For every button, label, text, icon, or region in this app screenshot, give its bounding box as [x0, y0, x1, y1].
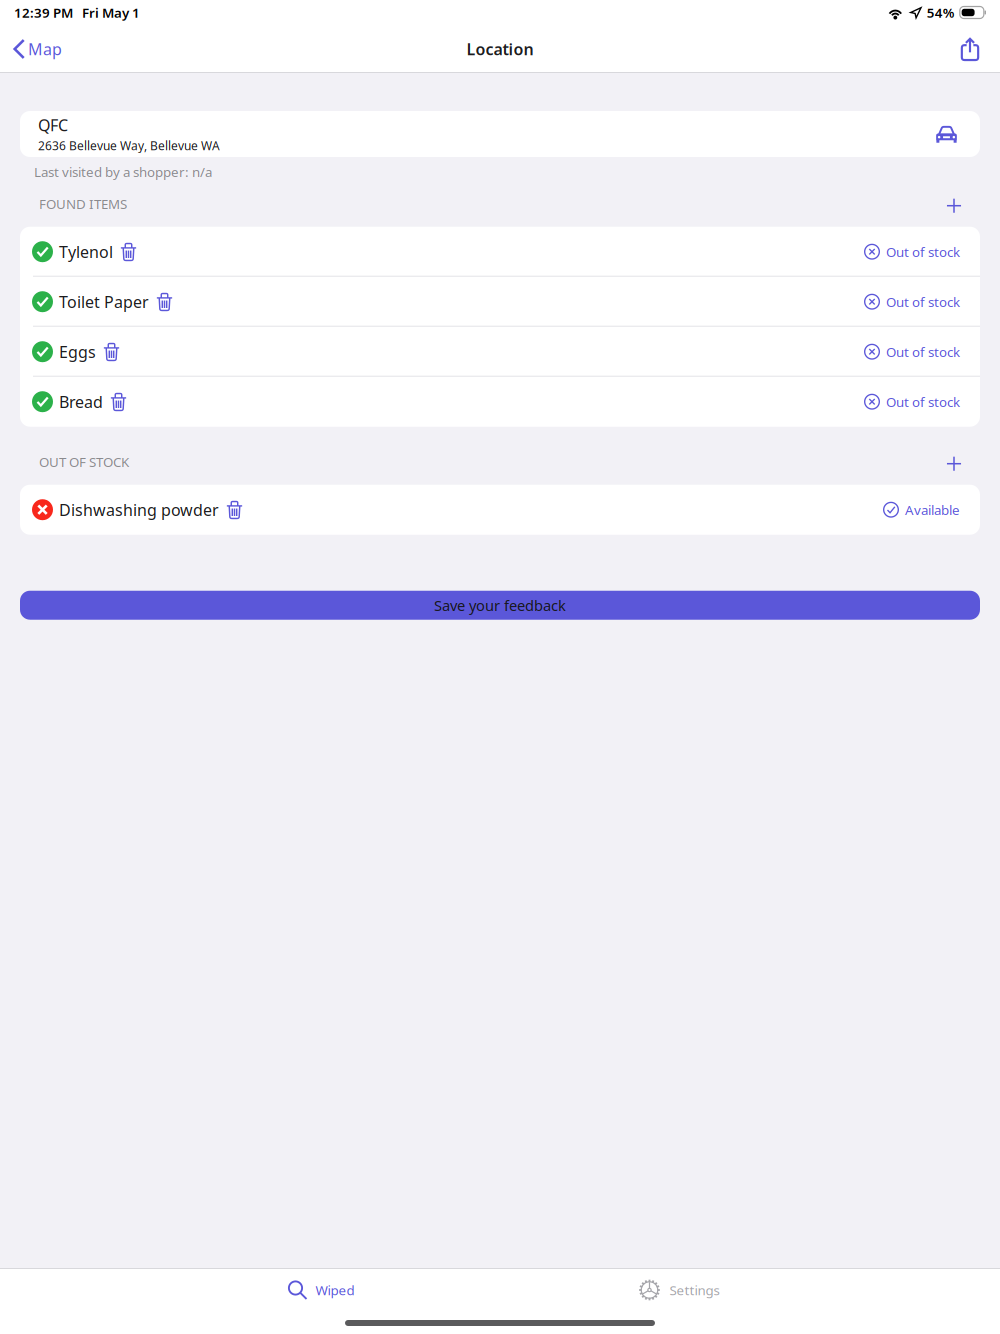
staticText: Settings [669, 1281, 719, 1299]
staticText: Fri May 1 [82, 4, 140, 21]
button[interactable]: Delete Toilet Paper [149, 277, 180, 327]
button[interactable]: Mark Dishwashing powder out of stock [20, 485, 59, 535]
staticText: Bread [59, 391, 103, 412]
button[interactable]: Wiped [142, 1268, 500, 1312]
staticText: FOUND ITEMS [39, 195, 127, 213]
button[interactable]: Save your feedback [20, 591, 980, 620]
button[interactable]: Map [0, 25, 73, 73]
button[interactable]: Settings [500, 1268, 858, 1312]
staticText: Out of stock [886, 243, 960, 261]
staticText: Save your feedback [434, 595, 566, 615]
staticText: 54% [927, 4, 955, 21]
staticText: Location [466, 38, 533, 60]
staticText: Toilet Paper [59, 291, 149, 312]
button[interactable]: Share [946, 25, 1000, 73]
staticText: Dishwashing powder [59, 499, 219, 520]
button[interactable]: Add item to FOUND ITEMS [942, 191, 966, 217]
button[interactable]: Mark Toilet Paper found [20, 277, 59, 327]
button[interactable]: Out of stock [864, 277, 980, 327]
button[interactable]: Delete Eggs [96, 327, 127, 377]
button[interactable]: QFC [20, 111, 980, 157]
button[interactable]: Delete Tylenol [113, 227, 144, 277]
staticText: Eggs [59, 341, 96, 362]
staticText: OUT OF STOCK [39, 453, 129, 471]
staticText: Out of stock [886, 393, 960, 411]
button[interactable]: Out of stock [864, 377, 980, 427]
button[interactable]: Out of stock [864, 327, 980, 377]
staticText: 12:39 PM [14, 4, 73, 21]
staticText: Last visited by a shopper: n/a [34, 163, 212, 181]
button[interactable]: Available [883, 485, 980, 535]
button[interactable]: Add item to OUT OF STOCK [942, 449, 966, 475]
staticText: Out of stock [886, 343, 960, 361]
staticText: Out of stock [886, 293, 960, 311]
button[interactable]: Delete Dishwashing powder [219, 485, 250, 535]
staticText: QFC [38, 114, 68, 136]
button[interactable]: Delete Bread [103, 377, 134, 427]
staticText: Tylenol [59, 241, 113, 262]
staticText: Wiped [315, 1281, 354, 1299]
staticText: 2636 Bellevue Way, Bellevue WA [38, 138, 220, 154]
button[interactable]: Mark Eggs found [20, 327, 59, 377]
staticText: Available [905, 501, 960, 519]
staticText: Map [28, 38, 62, 60]
button[interactable]: Mark Tylenol found [20, 227, 59, 277]
button[interactable]: Mark Bread found [20, 377, 59, 427]
button[interactable]: Out of stock [864, 227, 980, 277]
